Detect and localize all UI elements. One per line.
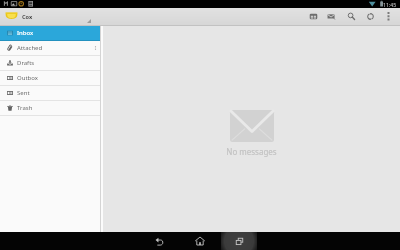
button[interactable]: Outbox (0, 71, 100, 85)
staticText: Drafts (17, 59, 35, 67)
staticText: Inbox (17, 29, 34, 37)
button[interactable]: Inbox (0, 26, 100, 40)
button[interactable]: Home (180, 232, 220, 250)
staticText: 11:45 (383, 1, 397, 8)
button[interactable]: Search (347, 8, 356, 25)
button[interactable]: Drafts (0, 56, 100, 70)
button[interactable]: Attached (0, 41, 100, 55)
staticText: Outbox (17, 74, 38, 82)
staticText: Cox (22, 13, 33, 21)
button[interactable]: Back (139, 232, 179, 250)
button[interactable]: Cox (0, 8, 100, 25)
staticText: No messages (226, 146, 277, 157)
button[interactable]: Trash (0, 101, 100, 115)
staticText: Trash (17, 104, 33, 112)
button[interactable]: Recent apps (221, 232, 257, 250)
staticText: Attached (17, 44, 43, 52)
button[interactable]: Mark as read (309, 8, 318, 25)
button[interactable]: More options (384, 8, 393, 25)
button[interactable]: Mail (327, 8, 336, 25)
staticText: Sent (17, 89, 30, 97)
button[interactable]: Refresh (366, 8, 375, 25)
button[interactable]: Sent (0, 86, 100, 100)
